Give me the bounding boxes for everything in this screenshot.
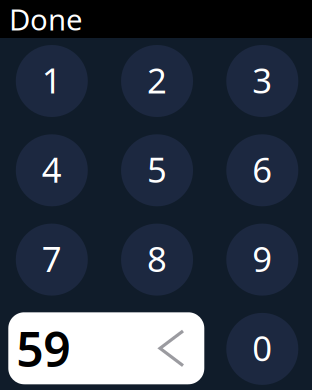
staticText: 7 <box>42 236 62 282</box>
button[interactable]: 0 <box>226 313 298 385</box>
button[interactable]: 5 <box>121 134 193 206</box>
button[interactable]: Done <box>0 0 83 38</box>
staticText: 3 <box>252 57 272 103</box>
staticText: 8 <box>147 236 167 282</box>
staticText: Done <box>9 0 83 38</box>
button[interactable]: 8 <box>121 224 193 296</box>
button[interactable]: 2 <box>121 45 193 117</box>
staticText: 5 <box>147 146 167 192</box>
button[interactable]: 4 <box>16 134 88 206</box>
button[interactable]: 1 <box>16 45 88 117</box>
staticText: 9 <box>252 236 272 282</box>
staticText: 0 <box>252 325 272 371</box>
button[interactable]: 7 <box>16 224 88 296</box>
button[interactable]: 9 <box>226 224 298 296</box>
staticText: 59 <box>16 316 70 380</box>
button[interactable]: Delete <box>158 329 204 367</box>
staticText: 2 <box>147 57 167 103</box>
staticText: 1 <box>42 57 62 103</box>
staticText: 4 <box>42 146 62 192</box>
button[interactable]: 3 <box>226 45 298 117</box>
button[interactable]: 6 <box>226 134 298 206</box>
staticText: 6 <box>252 146 272 192</box>
